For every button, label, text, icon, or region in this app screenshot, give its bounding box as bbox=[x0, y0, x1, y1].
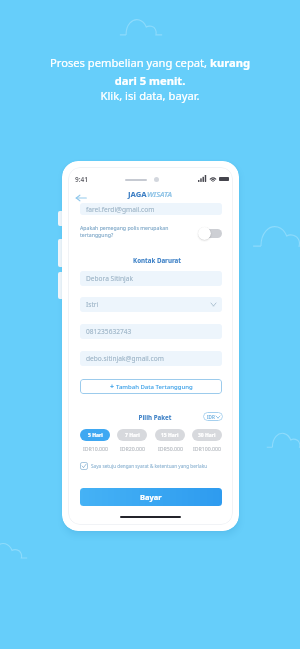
staticText: 30 Hari bbox=[198, 432, 216, 439]
button[interactable]: 5 Hari bbox=[80, 429, 110, 441]
staticText: Klik, isi data, bayar. bbox=[48, 88, 252, 103]
staticText: Kontak Darurat bbox=[86, 256, 228, 264]
button[interactable]: Back bbox=[74, 191, 88, 205]
staticText: IDR10.000 bbox=[83, 445, 108, 452]
staticText: farel.ferdi@gmail.com bbox=[86, 205, 155, 214]
staticText: + bbox=[110, 382, 116, 392]
staticText: Apakah pemegang polis merupakan tertangg… bbox=[80, 224, 169, 238]
button[interactable]: + bbox=[80, 379, 222, 394]
staticText: Bayar bbox=[140, 492, 162, 502]
staticText: debo.sitinjak@gmail.com bbox=[86, 354, 164, 363]
staticText: 081235632743 bbox=[86, 327, 132, 336]
staticText: IDR50.000 bbox=[158, 445, 183, 452]
staticText: WISATA bbox=[147, 189, 172, 199]
button[interactable]: 30 Hari bbox=[192, 429, 222, 441]
staticText: Saya setuju dengan syarat & ketentuan ya… bbox=[91, 463, 208, 469]
button[interactable]: Saya setuju dengan syarat & ketentuan ya… bbox=[80, 461, 208, 471]
staticText: Tambah Data Tertanggung bbox=[116, 383, 193, 391]
staticText: IDR100.000 bbox=[193, 445, 221, 452]
button[interactable]: debo.sitinjak@gmail.com bbox=[80, 351, 222, 366]
staticText: Pilih Paket bbox=[84, 413, 226, 421]
button[interactable]: IDR bbox=[203, 412, 223, 421]
staticText: 15 Hari bbox=[161, 432, 179, 439]
staticText: IDR20.000 bbox=[120, 445, 145, 452]
button[interactable]: Bayar bbox=[80, 488, 222, 506]
staticText: Istri bbox=[86, 300, 99, 309]
button[interactable]: Debora Sitinjak bbox=[80, 271, 222, 286]
button[interactable]: Istri bbox=[80, 297, 222, 312]
staticText: 9:41 bbox=[75, 175, 88, 184]
staticText: Debora Sitinjak bbox=[86, 274, 133, 283]
staticText: JAGA bbox=[128, 189, 147, 199]
button[interactable]: 7 Hari bbox=[117, 429, 147, 441]
button[interactable]: 15 Hari bbox=[155, 429, 185, 441]
button[interactable]: farel.ferdi@gmail.com bbox=[80, 203, 222, 215]
staticText: 7 Hari bbox=[125, 432, 140, 439]
button[interactable]: Toggle tertanggung bbox=[198, 227, 222, 243]
staticText: IDR bbox=[207, 414, 215, 420]
staticText: 5 Hari bbox=[88, 432, 103, 439]
button[interactable]: 081235632743 bbox=[80, 324, 222, 339]
staticText: Proses pembelian yang cepat, kurang dari… bbox=[48, 55, 252, 88]
